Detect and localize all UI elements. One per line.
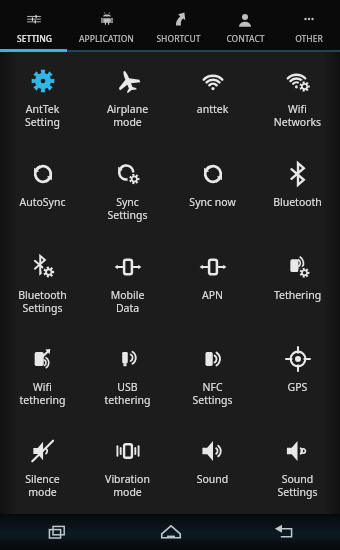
staticText: NFC Settings [172, 380, 253, 407]
staticText: Sync now [172, 195, 253, 209]
staticText: Sound [172, 472, 253, 486]
button[interactable]: APN [170, 238, 255, 330]
staticText: GPS [257, 380, 338, 394]
staticText: OTHER [295, 33, 323, 45]
button[interactable]: Sound [170, 422, 255, 514]
button[interactable]: Wifi Networks [255, 52, 340, 145]
staticText: Bluetooth Settings [2, 288, 83, 315]
staticText: Airplane mode [87, 102, 168, 129]
button[interactable]: Airplane mode [85, 52, 170, 145]
staticText: CONTACT [226, 33, 265, 45]
button[interactable]: Wifi tethering [0, 330, 85, 422]
staticText: Mobile Data [87, 288, 168, 315]
staticText: Wifi Networks [257, 102, 338, 129]
button[interactable]: Sync Settings [85, 145, 170, 238]
button[interactable]: AutoSync [0, 145, 85, 238]
button[interactable]: Back [227, 514, 340, 550]
staticText: Wifi tethering [2, 380, 83, 407]
button[interactable]: CONTACT [212, 8, 278, 45]
button[interactable]: Tethering [255, 238, 340, 330]
staticText: Tethering [257, 288, 338, 302]
staticText: Vibration mode [87, 472, 168, 499]
staticText: Sound Settings [257, 472, 338, 499]
button[interactable]: APPLICATION [68, 8, 145, 45]
button[interactable]: GPS [255, 330, 340, 422]
button[interactable]: Vibration mode [85, 422, 170, 514]
button[interactable]: Recents [0, 514, 114, 550]
staticText: AutoSync [2, 195, 83, 209]
staticText: USB tethering [87, 380, 168, 407]
staticText: SETTING [17, 33, 52, 45]
staticText: APPLICATION [79, 33, 134, 45]
button[interactable]: NFC Settings [170, 330, 255, 422]
staticText: AntTek Setting [2, 102, 83, 129]
staticText: SHORTCUT [156, 33, 201, 45]
staticText: Silence mode [2, 472, 83, 499]
button[interactable]: USB tethering [85, 330, 170, 422]
button[interactable]: Silence mode [0, 422, 85, 514]
button[interactable]: Bluetooth Settings [0, 238, 85, 330]
button[interactable]: SETTING [0, 8, 68, 45]
button[interactable]: Sound Settings [255, 422, 340, 514]
staticText: Bluetooth [257, 195, 338, 209]
button[interactable]: Mobile Data [85, 238, 170, 330]
button[interactable]: Bluetooth [255, 145, 340, 238]
staticText: anttek [172, 102, 253, 116]
button[interactable]: OTHER [278, 8, 340, 45]
button[interactable]: Sync now [170, 145, 255, 238]
staticText: Sync Settings [87, 195, 168, 222]
button[interactable]: Home [114, 514, 227, 550]
staticText: APN [172, 288, 253, 302]
button[interactable]: anttek [170, 52, 255, 145]
button[interactable]: AntTek Setting [0, 52, 85, 145]
button[interactable]: SHORTCUT [145, 8, 212, 45]
